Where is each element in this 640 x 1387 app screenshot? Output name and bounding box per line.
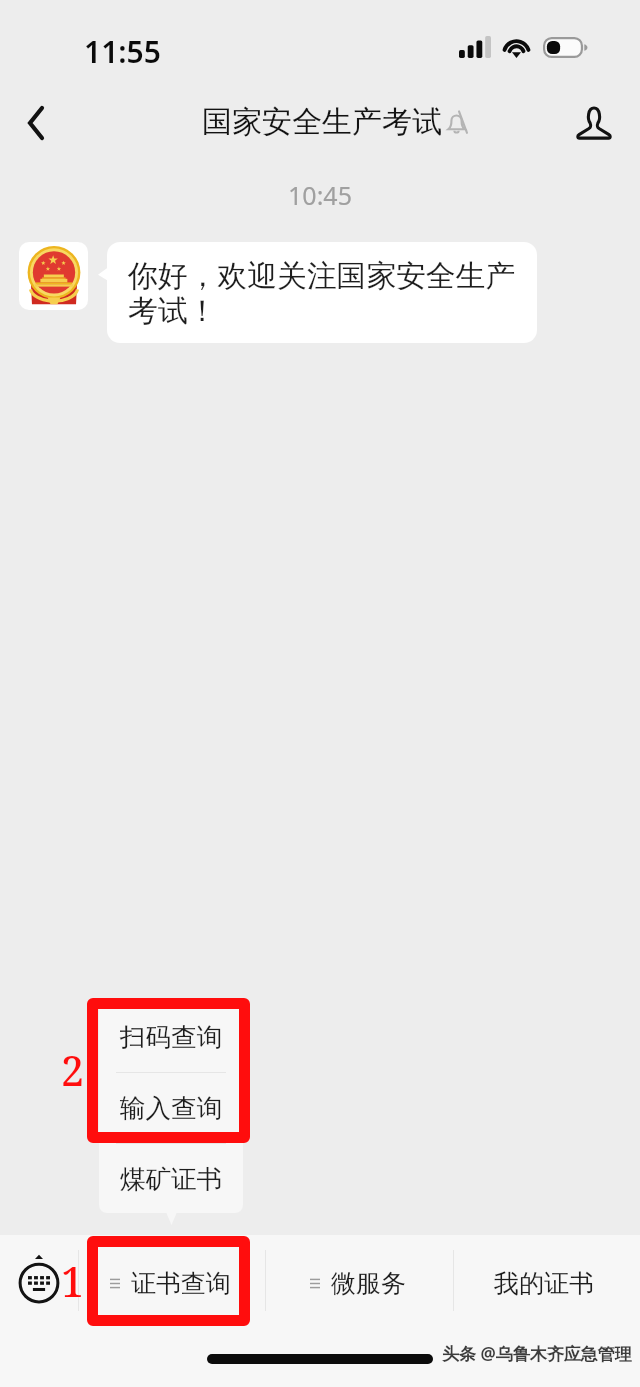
button[interactable]: 我的证书: [451, 1235, 637, 1331]
staticText: 国家安全生产考试: [202, 103, 442, 141]
button[interactable]: 微服务: [264, 1235, 451, 1331]
staticText: 头条 @乌鲁木齐应急管理: [442, 1342, 632, 1365]
button[interactable]: 证书查询: [77, 1235, 263, 1331]
button[interactable]: 扫码查询: [99, 1002, 243, 1072]
button[interactable]: Back: [6, 93, 66, 153]
button[interactable]: Profile: [564, 93, 624, 153]
button[interactable]: Keyboard: [8, 1247, 70, 1309]
staticText: 我的证书: [494, 1268, 594, 1299]
staticText: 10:45: [0, 178, 640, 212]
staticText: 11:55: [84, 31, 161, 72]
staticText: 扫码查询: [120, 1021, 222, 1053]
staticText: 2: [61, 1042, 85, 1098]
staticText: 输入查询: [120, 1092, 222, 1124]
staticText: 煤矿证书: [120, 1163, 222, 1195]
staticText: 微服务: [331, 1268, 406, 1299]
staticText: 证书查询: [131, 1268, 231, 1299]
button[interactable]: 你好，欢迎关注国家安全生产 考试！: [107, 242, 537, 343]
staticText: 1: [61, 1253, 85, 1309]
button[interactable]: 煤矿证书: [99, 1144, 243, 1213]
staticText: 你好，欢迎关注国家安全生产 考试！: [128, 257, 516, 330]
button[interactable]: 输入查询: [99, 1073, 243, 1143]
button[interactable]: Avatar: [19, 242, 88, 310]
